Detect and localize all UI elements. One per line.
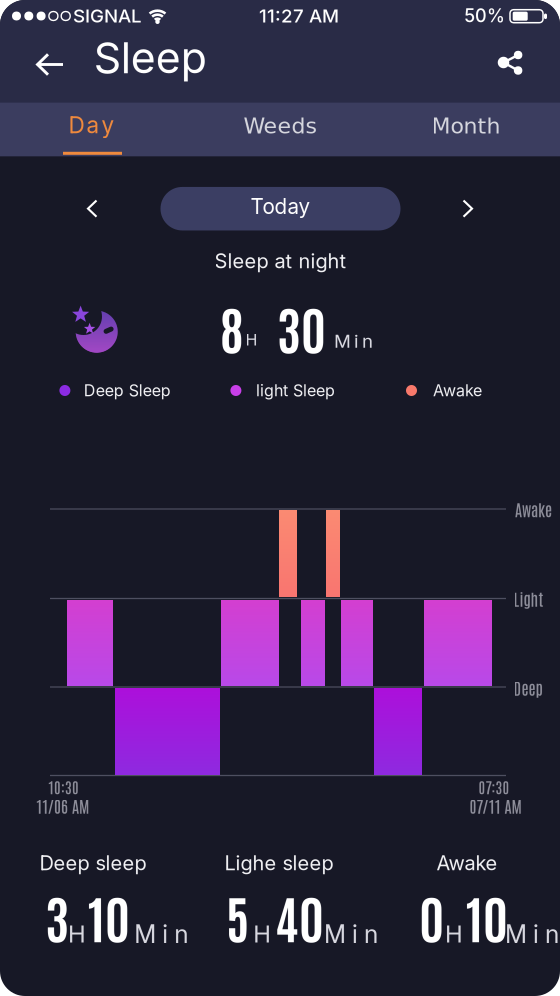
staticText: Awake bbox=[433, 381, 482, 400]
staticText: Month bbox=[431, 113, 500, 139]
staticText: M i n bbox=[334, 330, 373, 352]
staticText: Deep sleep bbox=[39, 851, 146, 875]
staticText: Weeds bbox=[243, 113, 316, 139]
staticText: Lighe sleep bbox=[224, 851, 333, 875]
staticText: 10 bbox=[466, 884, 508, 949]
staticText: M i n bbox=[324, 919, 378, 949]
button[interactable]: Previous day bbox=[80, 193, 104, 223]
staticText: Light bbox=[513, 588, 543, 609]
staticText: Today bbox=[250, 194, 310, 219]
staticText: 5 bbox=[226, 884, 250, 949]
staticText: 07:30 bbox=[478, 777, 509, 796]
staticText: 11:27 AM bbox=[259, 4, 339, 27]
staticText: H bbox=[253, 919, 271, 948]
staticText: M i n bbox=[505, 919, 559, 949]
staticText: SIGNAL bbox=[73, 4, 142, 27]
staticText: 40 bbox=[275, 884, 324, 949]
staticText: M i n bbox=[134, 919, 188, 949]
staticText: Deep bbox=[513, 677, 542, 698]
staticText: 07/11 AM bbox=[469, 795, 521, 816]
staticText: 30 bbox=[277, 295, 326, 360]
button[interactable]: Share bbox=[496, 48, 526, 78]
staticText: D a y bbox=[68, 111, 114, 139]
staticText: 8 bbox=[220, 295, 244, 360]
button[interactable]: Back bbox=[32, 49, 68, 79]
staticText: 50% bbox=[464, 5, 505, 27]
staticText: 10 bbox=[88, 884, 130, 949]
staticText: light Sleep bbox=[256, 381, 335, 400]
staticText: Deep Sleep bbox=[84, 381, 171, 400]
staticText: 3 bbox=[45, 884, 69, 949]
staticText: 11/06 AM bbox=[36, 795, 89, 816]
staticText: Awake bbox=[436, 851, 497, 875]
button[interactable]: Today bbox=[160, 187, 400, 230]
staticText: 0 bbox=[419, 884, 444, 949]
staticText: Sleep bbox=[94, 32, 207, 84]
staticText: Sleep at night bbox=[214, 249, 346, 273]
button[interactable]: Weeds bbox=[187, 99, 373, 153]
staticText: H bbox=[245, 330, 257, 349]
button[interactable]: D a y bbox=[0, 102, 186, 156]
button[interactable]: Next day bbox=[456, 193, 480, 223]
staticText: 10:30 bbox=[48, 777, 79, 796]
button[interactable]: Month bbox=[373, 99, 559, 153]
staticText: Awake bbox=[515, 499, 552, 519]
staticText: H bbox=[68, 919, 86, 948]
staticText: H bbox=[445, 919, 463, 948]
